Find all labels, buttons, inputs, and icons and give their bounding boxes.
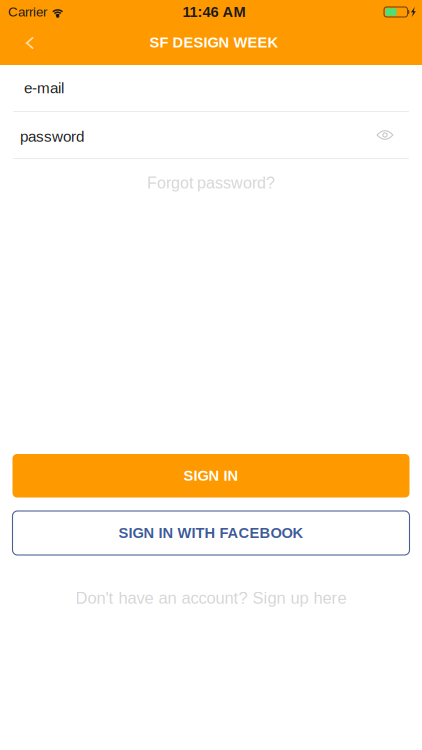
- staticText: 11:46 AM: [182, 4, 245, 20]
- staticText: password: [20, 128, 84, 145]
- button[interactable]: Don't have an account? Sign up here: [0, 576, 422, 620]
- button[interactable]: Forgot password?: [0, 159, 422, 207]
- staticText: Forgot password?: [147, 174, 275, 192]
- button[interactable]: Show password: [363, 112, 407, 158]
- staticText: Don't have an account? Sign up here: [75, 589, 346, 607]
- staticText: SF DESIGN WEEK: [149, 34, 278, 51]
- button[interactable]: SIGN IN WITH FACEBOOK: [12, 511, 409, 555]
- button[interactable]: Back: [9, 22, 51, 63]
- staticText: SIGN IN: [183, 468, 238, 484]
- button[interactable]: SIGN IN: [12, 454, 409, 497]
- staticText: Carrier: [8, 5, 47, 19]
- staticText: e-mail: [24, 79, 64, 96]
- staticText: SIGN IN WITH FACEBOOK: [118, 525, 303, 541]
